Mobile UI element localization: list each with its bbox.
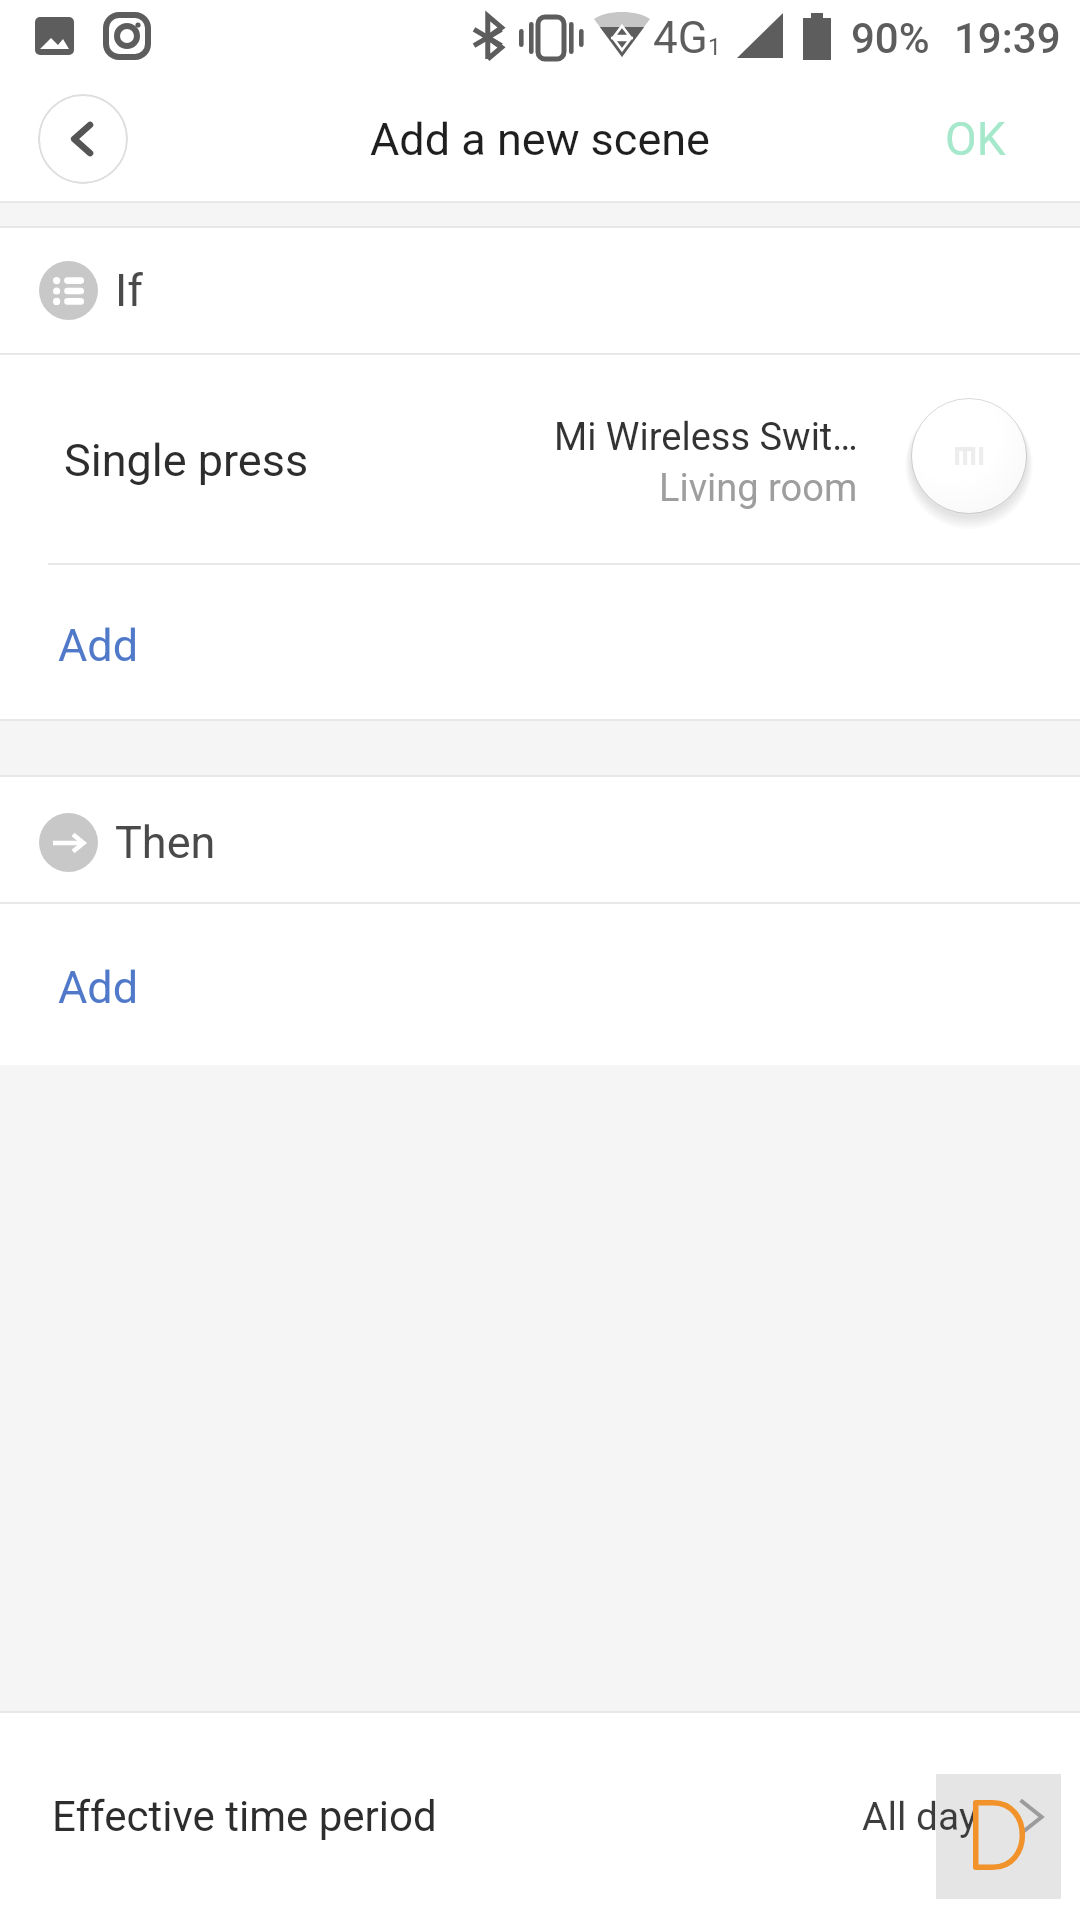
staticText: Mi Wireless Swit… — [554, 415, 858, 460]
button[interactable]: Single press — [0, 355, 1080, 563]
button[interactable]: Add — [0, 904, 1080, 1065]
staticText: Add — [58, 961, 139, 1014]
staticText: Living room — [659, 466, 858, 511]
button[interactable]: Floating shortcut — [936, 1774, 1061, 1899]
button[interactable]: OK — [905, 88, 1080, 190]
staticText: All day — [862, 1794, 978, 1840]
button[interactable]: Add — [0, 565, 1080, 719]
staticText: 19:39 — [954, 14, 1061, 63]
staticText: 90% — [851, 14, 930, 63]
staticText: Add — [58, 619, 139, 672]
staticText: Add a new scene — [370, 113, 710, 166]
staticText: Then — [115, 816, 216, 869]
staticText: OK — [945, 112, 1006, 166]
staticText: Effective time period — [52, 1792, 437, 1841]
staticText: Single press — [64, 434, 309, 487]
staticText: 1 — [708, 34, 721, 61]
staticText: If — [115, 264, 143, 317]
staticText: 4G — [653, 12, 708, 64]
button[interactable]: Effective time period — [0, 1713, 1080, 1920]
button[interactable]: Back — [38, 94, 128, 184]
